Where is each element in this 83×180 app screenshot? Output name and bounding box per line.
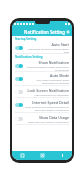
staticText: Show network and download speed for back… xyxy=(25,105,69,111)
staticText: Auto Mode xyxy=(50,73,69,78)
staticText: Lock Screen Notification xyxy=(27,88,69,93)
button[interactable]: Enabled xyxy=(15,103,23,107)
button[interactable]: Enabled xyxy=(12,72,72,85)
staticText: Application services run when device boo… xyxy=(25,47,69,53)
button[interactable]: Add xyxy=(64,28,72,36)
button[interactable]: Home xyxy=(32,151,52,160)
button[interactable]: Apps xyxy=(12,151,32,160)
button[interactable]: Enabled xyxy=(12,42,72,53)
button[interactable]: Enabled xyxy=(15,46,23,50)
button[interactable]: More xyxy=(52,151,72,160)
staticText: Hide notification on lockscreen xyxy=(34,93,69,96)
button[interactable]: Disabled xyxy=(15,117,23,121)
button[interactable]: Disabled xyxy=(12,113,72,124)
staticText: Notification Setting xyxy=(24,29,65,35)
button[interactable]: Enabled xyxy=(15,77,23,81)
button[interactable]: Enabled xyxy=(12,60,72,71)
staticText: Auto mode notification effect informatio… xyxy=(25,78,69,84)
staticText: Notification Setting xyxy=(15,55,43,59)
staticText: Control bandwidth speed information in s… xyxy=(25,65,69,71)
button[interactable]: Enabled xyxy=(12,98,72,112)
button[interactable]: Disabled xyxy=(12,86,72,97)
staticText: Startup Setting xyxy=(15,37,37,41)
staticText: Auto Start xyxy=(51,42,69,47)
staticText: Show Notification xyxy=(38,60,69,65)
staticText: Show daily total usage in notification xyxy=(27,120,69,123)
button[interactable]: Enabled xyxy=(15,64,23,68)
staticText: Internet Speed Detail xyxy=(32,100,69,105)
button[interactable]: Disabled xyxy=(15,90,23,94)
staticText: Show Data Usage xyxy=(39,115,69,120)
